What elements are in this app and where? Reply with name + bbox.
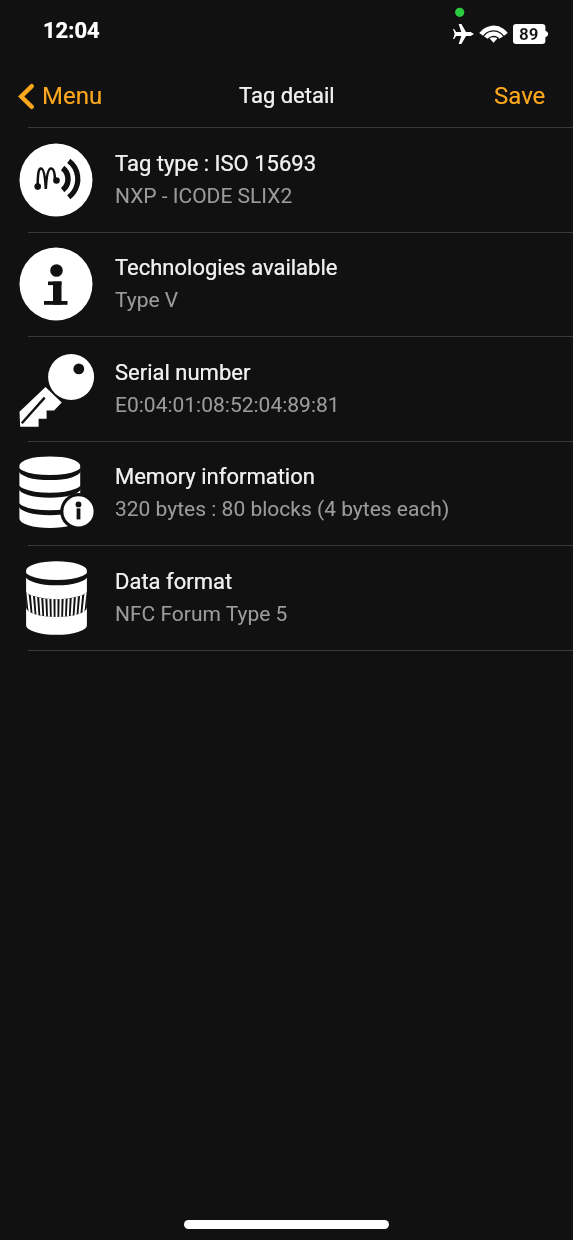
staticText: Technologies available (115, 255, 338, 281)
staticText: NXP - ICODE SLIX2 (115, 184, 293, 209)
staticText: Type V (115, 288, 179, 313)
other: Serial number (18, 351, 94, 427)
staticText: Tag detail (239, 83, 335, 109)
button[interactable]: Save (474, 74, 573, 118)
other: Technologies available (18, 246, 94, 322)
other: Tag type (18, 142, 94, 218)
staticText: Serial number (115, 360, 251, 386)
staticText: Memory information (115, 464, 315, 490)
staticText: E0:04:01:08:52:04:89:81 (115, 393, 340, 418)
staticText: 89 (519, 24, 539, 44)
button[interactable]: Technologies available (0, 232, 573, 336)
button[interactable]: Tag type (0, 128, 573, 232)
staticText: 320 bytes : 80 blocks (4 bytes each) (115, 497, 450, 522)
staticText: Data format (115, 569, 233, 595)
staticText: NFC Forum Type 5 (115, 602, 288, 627)
button[interactable]: Menu (0, 74, 117, 118)
staticText: Menu (42, 82, 103, 110)
button[interactable]: Serial number (0, 337, 573, 441)
staticText: 12:04 (43, 18, 100, 44)
other: Data format (18, 560, 94, 636)
staticText: Tag type : ISO 15693 (115, 151, 317, 177)
button[interactable]: Data format (0, 546, 573, 650)
button[interactable]: Memory information (0, 441, 573, 545)
other: Memory information (18, 455, 94, 531)
